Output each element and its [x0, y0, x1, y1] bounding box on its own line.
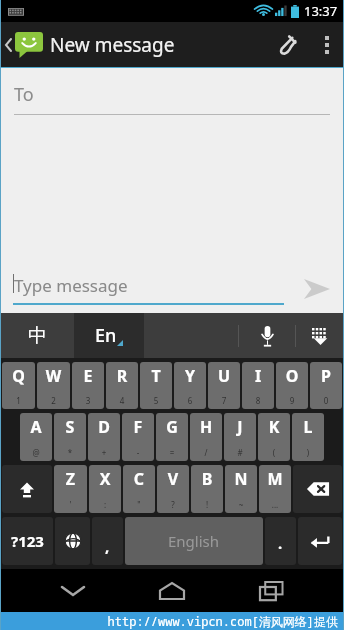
staticText: H: [190, 416, 222, 438]
button[interactable]: M: [259, 465, 291, 513]
button[interactable]: En: [74, 313, 144, 358]
staticText: C: [123, 468, 155, 490]
staticText: S: [54, 416, 86, 438]
button[interactable]: Change language: [55, 517, 90, 565]
button[interactable]: Attach: [264, 22, 310, 67]
staticText: U: [208, 365, 240, 387]
button[interactable]: O: [276, 362, 308, 409]
button[interactable]: To: [0, 68, 344, 115]
staticText: P: [310, 365, 342, 387]
staticText: V: [157, 468, 189, 490]
button[interactable]: Hide keyboard: [40, 569, 106, 612]
staticText: #: [224, 447, 256, 458]
staticText: B: [191, 468, 223, 490]
button[interactable]: G: [156, 413, 188, 461]
button[interactable]: L: [292, 413, 324, 461]
staticText: A: [20, 416, 52, 438]
staticText: Z: [54, 468, 87, 490]
button[interactable]: X: [89, 465, 121, 513]
button[interactable]: ,: [92, 517, 123, 565]
staticText: M: [259, 468, 291, 490]
staticText: ?: [157, 499, 189, 510]
button[interactable]: A: [20, 413, 52, 461]
staticText: X: [89, 468, 121, 490]
button[interactable]: .: [265, 517, 296, 565]
button[interactable]: N: [225, 465, 257, 513]
staticText: *: [54, 447, 86, 458]
button[interactable]: Send: [290, 265, 344, 313]
button[interactable]: P: [310, 362, 342, 409]
staticText: 4: [106, 395, 138, 406]
button[interactable]: Shift: [2, 465, 52, 513]
button[interactable]: Backspace: [293, 465, 342, 513]
staticText: (: [258, 447, 290, 458]
staticText: 1: [2, 395, 35, 406]
staticText: 3: [72, 395, 104, 406]
staticText: F: [122, 416, 154, 438]
staticText: J: [224, 416, 256, 438]
button[interactable]: Home: [139, 569, 205, 612]
staticText: En: [95, 323, 117, 348]
staticText: +: [88, 447, 120, 458]
staticText: O: [276, 365, 308, 387]
button[interactable]: K: [258, 413, 290, 461]
staticText: http://www.vipcn.com[清风网络]提供: [0, 613, 338, 629]
button[interactable]: R: [106, 362, 138, 409]
button[interactable]: B: [191, 465, 223, 513]
button[interactable]: V: [157, 465, 189, 513]
staticText: G: [156, 416, 188, 438]
button[interactable]: ?123: [2, 517, 53, 565]
staticText: ~: [225, 499, 257, 510]
button[interactable]: T: [140, 362, 172, 409]
button[interactable]: 中: [0, 313, 74, 358]
button[interactable]: W: [37, 362, 70, 409]
button[interactable]: S: [54, 413, 86, 461]
staticText: 9: [276, 395, 308, 406]
button[interactable]: Recent apps: [238, 569, 304, 612]
button[interactable]: Hide keyboard: [296, 313, 344, 358]
button[interactable]: Enter: [298, 517, 342, 565]
button[interactable]: D: [88, 413, 120, 461]
button[interactable]: H: [190, 413, 222, 461]
button[interactable]: Type message: [0, 274, 290, 305]
staticText: E: [72, 365, 104, 387]
staticText: K: [258, 416, 290, 438]
staticText: ?123: [11, 531, 44, 551]
staticText: R: [106, 365, 138, 387]
staticText: 2: [37, 395, 70, 406]
button[interactable]: English: [125, 517, 263, 565]
button[interactable]: Q: [2, 362, 35, 409]
button[interactable]: I: [242, 362, 274, 409]
staticText: W: [37, 365, 70, 387]
staticText: To: [14, 82, 34, 107]
staticText: /: [190, 447, 222, 458]
button[interactable]: C: [123, 465, 155, 513]
staticText: 中: [28, 324, 47, 348]
button[interactable]: Z: [54, 465, 87, 513]
button[interactable]: Voice input: [239, 313, 295, 358]
staticText: 5: [140, 395, 172, 406]
staticText: D: [88, 416, 120, 438]
staticText: N: [225, 468, 257, 490]
button[interactable]: More options: [310, 22, 344, 67]
button[interactable]: U: [208, 362, 240, 409]
staticText: T: [140, 365, 172, 387]
staticText: !: [191, 499, 223, 510]
staticText: =: [156, 447, 188, 458]
button[interactable]: J: [224, 413, 256, 461]
button[interactable]: New message: [0, 32, 177, 58]
staticText: 13:37: [304, 2, 338, 20]
staticText: New message: [50, 32, 175, 58]
button[interactable]: F: [122, 413, 154, 461]
staticText: 0: [310, 395, 342, 406]
staticText: .: [278, 533, 283, 553]
staticText: Type message: [14, 274, 128, 297]
button[interactable]: Y: [174, 362, 206, 409]
staticText: ,: [105, 536, 110, 556]
staticText: I: [242, 365, 274, 387]
button[interactable]: E: [72, 362, 104, 409]
staticText: Y: [174, 365, 206, 387]
